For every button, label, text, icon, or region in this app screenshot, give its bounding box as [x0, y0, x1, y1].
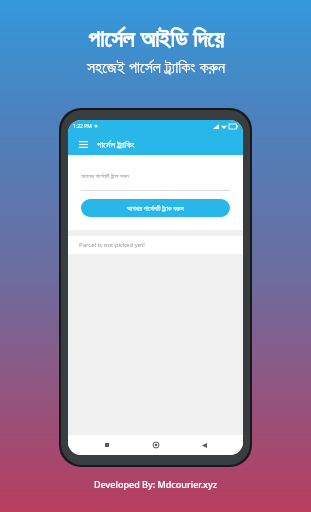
staticText: আপনার পার্সেলটি ট্র্যাক করুন: [127, 204, 184, 213]
staticText: Developed By: Mdcourier.xyz: [94, 478, 218, 490]
staticText: সহজেই পার্সেল ট্র্যাকিং করুন: [87, 56, 225, 78]
staticText: পার্সেল ট্র্যাকিং: [97, 138, 135, 150]
staticText: পার্সেল আইডি দিয়ে: [88, 22, 224, 53]
staticText: 1:22 PM: [73, 123, 92, 130]
button[interactable]: Open navigation menu: [75, 136, 91, 152]
staticText: আপনার পার্সেলটি ট্র্যাক করুন: [81, 172, 129, 179]
button[interactable]: Recent apps: [98, 436, 116, 454]
button[interactable]: আপনার পার্সেলটি ট্র্যাক করুন: [81, 199, 230, 217]
button[interactable]: Home: [147, 436, 165, 454]
staticText: Parcel is not picked yet!: [79, 241, 145, 249]
button[interactable]: Back: [195, 436, 213, 454]
button[interactable]: আপনার পার্সেলটি ট্র্যাক করুন: [81, 172, 230, 191]
